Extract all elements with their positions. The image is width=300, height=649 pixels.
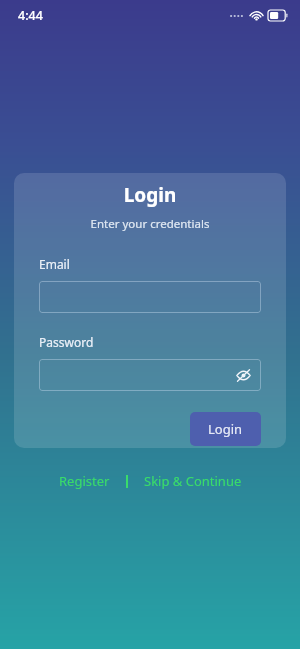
staticText: 4:44	[18, 7, 43, 24]
button[interactable]: Toggle password visibility	[231, 363, 255, 387]
button[interactable]: Register	[55, 469, 114, 493]
staticText: Login	[14, 182, 286, 208]
button[interactable]: Skip & Continue	[140, 469, 246, 493]
staticText: Login	[208, 420, 243, 438]
staticText: Email	[39, 256, 70, 272]
button[interactable]	[39, 281, 261, 313]
staticText: Skip & Continue	[144, 472, 242, 490]
staticText: Enter your credentials	[14, 216, 286, 232]
button[interactable]: Toggle password visibility	[39, 359, 261, 391]
button[interactable]: Login	[190, 412, 261, 446]
staticText: Register	[59, 472, 110, 490]
staticText: Password	[39, 334, 94, 350]
